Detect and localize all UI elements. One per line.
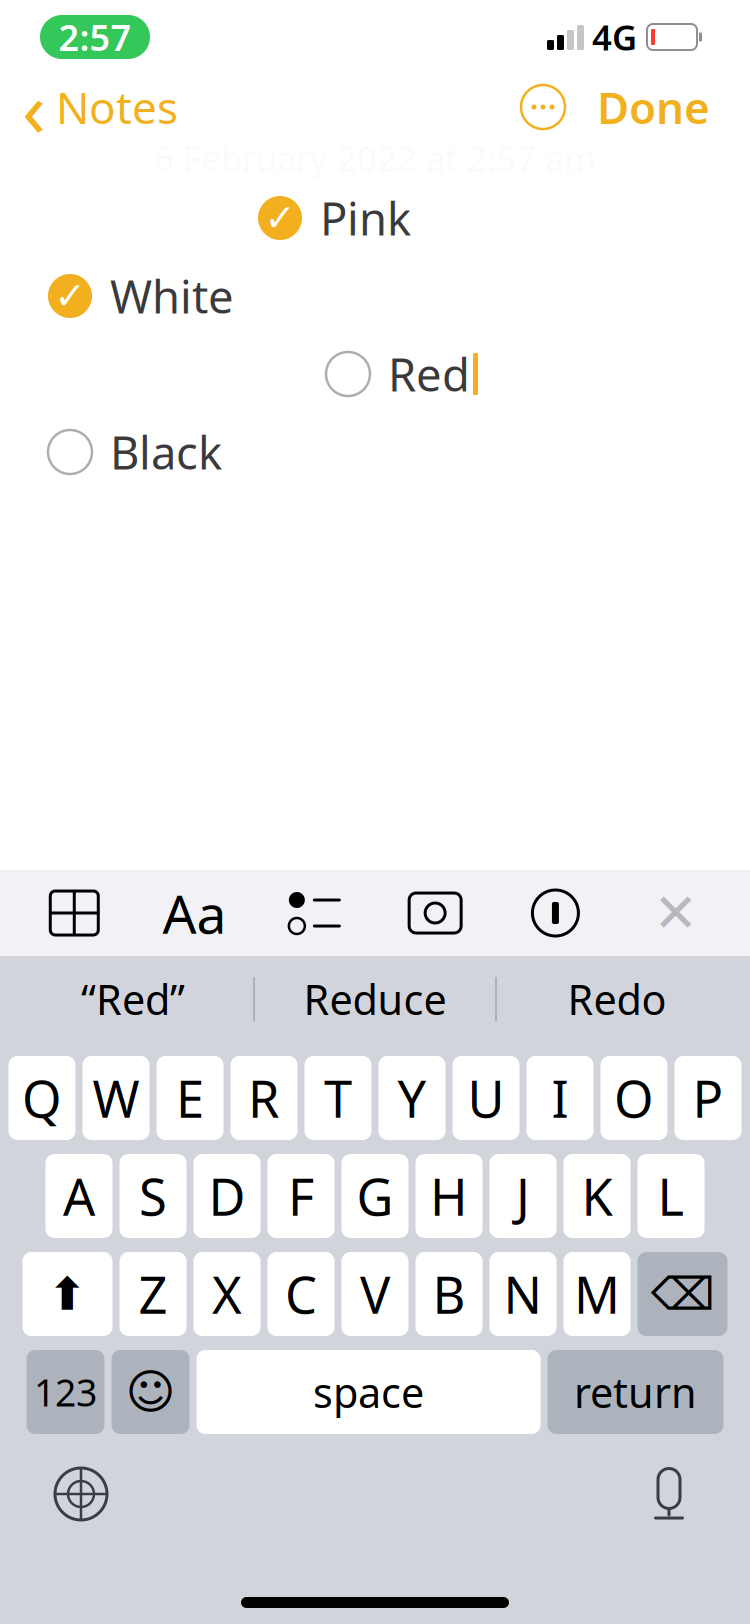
button[interactable]: W: [82, 1056, 149, 1140]
button[interactable]: B: [415, 1252, 482, 1336]
button[interactable]: Markup: [509, 870, 601, 956]
button[interactable]: More options: [507, 74, 579, 140]
staticText: X: [212, 1260, 242, 1328]
staticText: “Red”: [81, 972, 185, 1026]
button[interactable]: G: [341, 1154, 408, 1238]
button[interactable]: J: [489, 1154, 556, 1238]
button[interactable]: Redo: [497, 956, 737, 1042]
staticText: space: [313, 1365, 424, 1419]
button[interactable]: F: [267, 1154, 334, 1238]
button[interactable]: Checklist: [269, 870, 361, 956]
staticText: Red: [388, 344, 470, 404]
button[interactable]: E: [156, 1056, 223, 1140]
staticText: Reduce: [303, 972, 446, 1026]
button[interactable]: Q: [8, 1056, 75, 1140]
staticText: 2:57: [58, 13, 131, 61]
button[interactable]: H: [415, 1154, 482, 1238]
staticText: ☺: [125, 1365, 175, 1419]
button[interactable]: Next keyboard: [36, 1456, 126, 1532]
staticText: Y: [397, 1064, 426, 1132]
button[interactable]: C: [267, 1252, 334, 1336]
button[interactable]: T: [304, 1056, 371, 1140]
button[interactable]: Red: [0, 346, 478, 402]
button[interactable]: I: [526, 1056, 593, 1140]
staticText: D: [208, 1162, 245, 1230]
staticText: Notes: [56, 78, 178, 136]
staticText: Black: [110, 422, 222, 482]
button[interactable]: Y: [378, 1056, 445, 1140]
button[interactable]: O: [600, 1056, 667, 1140]
staticText: J: [516, 1162, 530, 1230]
staticText: ✓: [264, 197, 295, 239]
button[interactable]: U: [452, 1056, 519, 1140]
staticText: B: [432, 1260, 465, 1328]
button[interactable]: S: [119, 1154, 186, 1238]
staticText: Done: [597, 78, 710, 136]
staticText: H: [430, 1162, 468, 1230]
button[interactable]: R: [230, 1056, 297, 1140]
button[interactable]: V: [341, 1252, 408, 1336]
button[interactable]: M: [563, 1252, 630, 1336]
staticText: V: [360, 1260, 390, 1328]
staticText: Z: [138, 1260, 167, 1328]
button[interactable]: Dictation: [624, 1456, 714, 1532]
button[interactable]: N: [489, 1252, 556, 1336]
button[interactable]: K: [563, 1154, 630, 1238]
button[interactable]: Shift: [22, 1252, 112, 1336]
staticText: 4G: [592, 14, 637, 60]
staticText: N: [503, 1260, 542, 1328]
staticText: O: [614, 1064, 654, 1132]
staticText: Redo: [567, 972, 666, 1026]
staticText: C: [285, 1260, 317, 1328]
button[interactable]: Done: [579, 74, 728, 140]
button[interactable]: ✓: [0, 268, 234, 324]
staticText: return: [574, 1365, 697, 1419]
staticText: ✕: [653, 883, 698, 943]
button[interactable]: space: [196, 1350, 540, 1434]
staticText: U: [467, 1064, 504, 1132]
staticText: L: [657, 1162, 684, 1230]
button[interactable]: Text formatting: [149, 870, 241, 956]
button[interactable]: X: [193, 1252, 260, 1336]
staticText: W: [92, 1064, 139, 1132]
button[interactable]: L: [637, 1154, 704, 1238]
button[interactable]: Delete: [637, 1252, 727, 1336]
button[interactable]: ✓: [0, 190, 411, 246]
staticText: G: [356, 1162, 393, 1230]
button[interactable]: 123: [26, 1350, 104, 1434]
button[interactable]: D: [193, 1154, 260, 1238]
button[interactable]: return: [547, 1350, 723, 1434]
staticText: K: [581, 1162, 612, 1230]
button[interactable]: P: [674, 1056, 741, 1140]
staticText: ⌫: [650, 1268, 714, 1320]
staticText: S: [139, 1162, 167, 1230]
staticText: 123: [34, 1367, 97, 1417]
staticText: Q: [22, 1064, 62, 1132]
staticText: ‹: [22, 56, 46, 158]
button[interactable]: Emoji: [111, 1350, 189, 1434]
button[interactable]: “Red”: [13, 956, 253, 1042]
staticText: A: [63, 1162, 95, 1230]
button[interactable]: Close keyboard: [630, 870, 722, 956]
staticText: P: [692, 1064, 723, 1132]
button[interactable]: Z: [119, 1252, 186, 1336]
button[interactable]: Black: [0, 424, 222, 480]
button[interactable]: A: [45, 1154, 112, 1238]
button[interactable]: Reduce: [255, 956, 495, 1042]
staticText: Pink: [320, 188, 411, 248]
staticText: I: [551, 1064, 568, 1132]
staticText: ⬆: [48, 1268, 86, 1320]
staticText: T: [324, 1064, 352, 1132]
staticText: ✓: [54, 275, 85, 317]
staticText: F: [288, 1162, 314, 1230]
staticText: R: [248, 1064, 280, 1132]
staticText: E: [176, 1064, 204, 1132]
button[interactable]: ‹: [0, 74, 192, 140]
staticText: White: [110, 266, 234, 326]
button[interactable]: Insert table: [28, 870, 120, 956]
staticText: Aa: [163, 878, 227, 948]
staticText: M: [574, 1260, 620, 1328]
button[interactable]: Camera: [389, 870, 481, 956]
